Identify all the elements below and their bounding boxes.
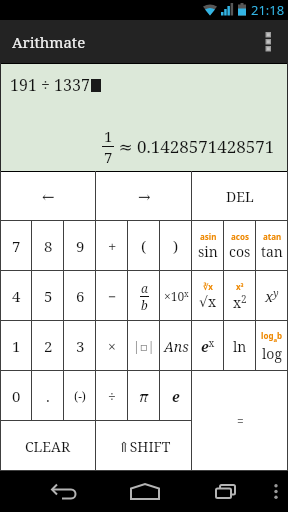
staticText: ( bbox=[141, 236, 147, 256]
staticText: 7 bbox=[12, 236, 21, 256]
staticText: ≈ 0.1428571428571 bbox=[114, 135, 275, 158]
button[interactable]: 4 bbox=[0, 271, 32, 321]
staticText: log bbox=[262, 344, 282, 363]
staticText: ln bbox=[233, 337, 247, 356]
button[interactable] bbox=[23, 471, 104, 512]
staticText: acos bbox=[231, 231, 249, 242]
button[interactable]: x³ bbox=[224, 271, 256, 321]
staticText: × bbox=[108, 337, 116, 356]
staticText: Arithmate bbox=[12, 32, 86, 52]
button[interactable]: DEL bbox=[192, 171, 288, 221]
staticText: 5 bbox=[44, 286, 53, 306]
button[interactable]: 5 bbox=[32, 271, 64, 321]
button[interactable]: = bbox=[192, 371, 288, 471]
staticText: 1 bbox=[104, 126, 113, 146]
button[interactable]: |▫| bbox=[128, 321, 160, 371]
staticText: → bbox=[138, 188, 151, 205]
staticText: 2 bbox=[44, 336, 53, 356]
button[interactable] bbox=[185, 471, 266, 512]
button[interactable]: ← bbox=[0, 171, 96, 221]
staticText: 3 bbox=[76, 336, 85, 356]
button[interactable]: (-) bbox=[64, 371, 96, 421]
staticText: xy bbox=[265, 286, 279, 306]
staticText: ×10x bbox=[164, 288, 189, 304]
button[interactable]: 9 bbox=[64, 221, 96, 271]
staticText: π bbox=[139, 387, 149, 406]
button[interactable]: ln bbox=[224, 321, 256, 371]
button[interactable]: asin bbox=[192, 221, 224, 271]
button[interactable]: ( bbox=[128, 221, 160, 271]
button[interactable]: 1 bbox=[0, 321, 32, 371]
button[interactable]: → bbox=[96, 171, 192, 221]
staticText: atan bbox=[263, 231, 282, 242]
staticText: DEL bbox=[226, 187, 254, 206]
staticText: x2 bbox=[233, 292, 247, 312]
button[interactable]: acos bbox=[224, 221, 256, 271]
staticText: . bbox=[46, 386, 50, 406]
button[interactable] bbox=[264, 471, 288, 512]
button[interactable]: ×10x bbox=[160, 271, 192, 321]
button[interactable]: ⇑SHIFT bbox=[96, 421, 192, 471]
staticText: |▫| bbox=[133, 338, 155, 354]
button[interactable]: e bbox=[160, 371, 192, 421]
button[interactable] bbox=[104, 471, 185, 512]
button[interactable]: − bbox=[96, 271, 128, 321]
staticText: logab bbox=[261, 330, 283, 344]
button[interactable]: ex bbox=[192, 321, 224, 371]
button[interactable]: + bbox=[96, 221, 128, 271]
button[interactable]: π bbox=[128, 371, 160, 421]
staticText: 8 bbox=[44, 236, 53, 256]
staticText: a bbox=[141, 280, 148, 296]
staticText: ∛x bbox=[203, 281, 213, 292]
staticText: 7 bbox=[104, 147, 113, 167]
staticText: 21:18 bbox=[251, 1, 285, 19]
button[interactable]: xy bbox=[256, 271, 288, 321]
staticText: 6 bbox=[76, 286, 85, 306]
staticText: ← bbox=[42, 188, 55, 205]
staticText: (-) bbox=[74, 388, 87, 404]
staticText: asin bbox=[200, 231, 217, 242]
staticText: 9 bbox=[76, 236, 85, 256]
button[interactable]: × bbox=[96, 321, 128, 371]
staticText: √x bbox=[199, 292, 217, 311]
button[interactable]: 8 bbox=[32, 221, 64, 271]
button[interactable]: . bbox=[32, 371, 64, 421]
staticText: 4 bbox=[12, 286, 21, 306]
button[interactable]: 2 bbox=[32, 321, 64, 371]
staticText: b bbox=[141, 297, 148, 313]
button[interactable]: 7 bbox=[0, 221, 32, 271]
staticText: CLEAR bbox=[25, 437, 71, 456]
staticText: sin bbox=[198, 242, 218, 261]
button[interactable]: ∛x bbox=[192, 271, 224, 321]
staticText: ex bbox=[201, 336, 215, 356]
button[interactable]: a bbox=[128, 271, 160, 321]
button[interactable]: 6 bbox=[64, 271, 96, 321]
staticText: − bbox=[108, 287, 117, 306]
button[interactable]: 0 bbox=[0, 371, 32, 421]
button[interactable]: Ans bbox=[160, 321, 192, 371]
staticText: cos bbox=[229, 242, 251, 261]
staticText: 191 ÷ 1337 bbox=[10, 74, 90, 96]
staticText: Ans bbox=[164, 337, 189, 356]
staticText: 1 bbox=[12, 336, 21, 356]
staticText: + bbox=[108, 236, 117, 256]
button[interactable]: CLEAR bbox=[0, 421, 96, 471]
button[interactable]: logab bbox=[256, 321, 288, 371]
staticText: x³ bbox=[236, 281, 244, 292]
button[interactable]: atan bbox=[256, 221, 288, 271]
button[interactable] bbox=[248, 20, 288, 63]
staticText: ÷ bbox=[108, 387, 116, 406]
staticText: ) bbox=[173, 236, 179, 256]
staticText: e bbox=[172, 387, 180, 406]
staticText: ⇑SHIFT bbox=[118, 437, 171, 456]
button[interactable]: ) bbox=[160, 221, 192, 271]
staticText: = bbox=[237, 413, 244, 429]
staticText: tan bbox=[261, 242, 283, 261]
button[interactable]: 3 bbox=[64, 321, 96, 371]
button[interactable]: ÷ bbox=[96, 371, 128, 421]
staticText: 0 bbox=[12, 386, 21, 406]
